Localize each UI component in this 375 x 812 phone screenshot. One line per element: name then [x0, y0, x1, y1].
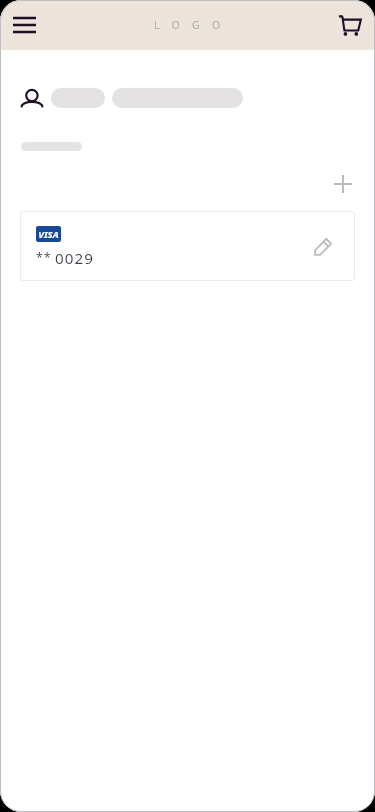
button[interactable]: Add payment method [327, 168, 359, 200]
button[interactable]: Cart [329, 5, 369, 45]
button[interactable]: Menu [4, 5, 44, 45]
staticText: VISA [38, 228, 59, 241]
button[interactable]: Edit card [310, 233, 336, 259]
button[interactable]: Account [20, 80, 44, 100]
button[interactable]: VISA [20, 211, 355, 281]
staticText: ** 0029 [36, 248, 95, 269]
staticText: LOGO [154, 18, 233, 32]
